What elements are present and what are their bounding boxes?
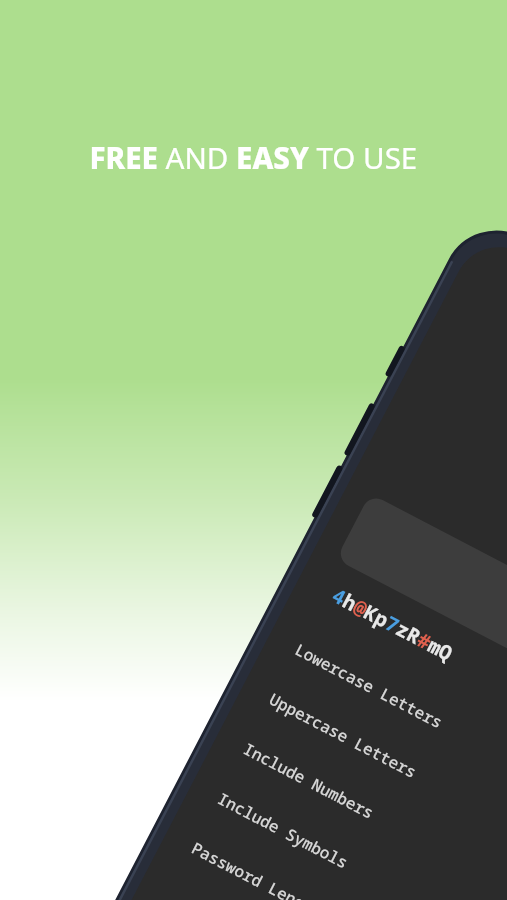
button[interactable]: Password generator app preview <box>0 0 507 900</box>
